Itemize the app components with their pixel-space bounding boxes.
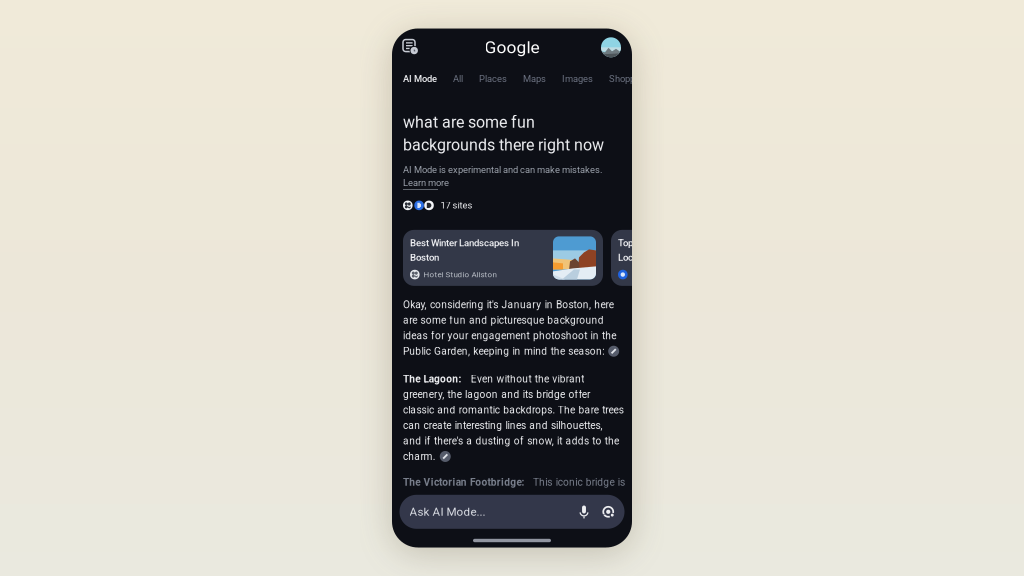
staticText: Visit Boston: [632, 270, 676, 279]
staticText: All: [453, 73, 463, 84]
staticText: and if there's a dusting of snow, it add…: [403, 435, 619, 447]
staticText: Boston: [410, 252, 439, 263]
staticText: Places: [479, 73, 507, 84]
button[interactable]: Images: [562, 73, 593, 84]
staticText: Locations In Boston: [618, 252, 699, 263]
staticText: backgrounds there right now: [403, 136, 604, 154]
button[interactable]: Learn more: [403, 177, 449, 190]
staticText: Ask AI Mode...: [409, 505, 485, 519]
staticText: The Victorian Footbridge:: [403, 476, 525, 488]
staticText: classic and romantic backdrops. The bare…: [403, 404, 624, 416]
button[interactable]: Top Winter Photo: [611, 230, 811, 286]
staticText: Even without the vibrant: [464, 373, 584, 385]
staticText: Okay, considering it's January in Boston…: [403, 299, 614, 311]
button[interactable]: AI Mode: [403, 73, 437, 84]
staticText: Google: [484, 37, 539, 57]
button[interactable]: Ask AI Mode...: [399, 495, 624, 539]
staticText: what are some fun: [403, 113, 535, 132]
staticText: charm.: [403, 450, 436, 462]
staticText: The Lagoon:: [403, 373, 461, 385]
button[interactable]: Places: [479, 73, 507, 84]
staticText: ideas for your engagement photoshoot in …: [403, 330, 616, 342]
staticText: This iconic bridge is: [528, 476, 625, 488]
staticText: are some fun and picturesque background: [403, 314, 604, 326]
button[interactable]: Best Winter Landscapes In: [403, 230, 603, 286]
staticText: Maps: [523, 73, 546, 84]
staticText: Public Garden, keeping in mind the seaso…: [403, 345, 604, 357]
staticText: Images: [562, 73, 593, 84]
button[interactable]: All: [453, 73, 463, 84]
staticText: Shopping: [609, 73, 647, 84]
staticText: greenery, the lagoon and its bridge offe…: [403, 389, 590, 400]
staticText: AI Mode is experimental and can make mis…: [403, 164, 602, 175]
button[interactable]: Google Account: [595, 34, 621, 60]
button[interactable]: Maps: [523, 73, 546, 84]
staticText: Top Winter Photo: [618, 237, 687, 249]
staticText: AI Mode: [403, 73, 437, 84]
staticText: Hotel Studio Allston: [424, 270, 497, 279]
button[interactable]: Search activity: [403, 34, 429, 60]
staticText: 17 sites: [440, 200, 472, 211]
staticText: Best Winter Landscapes In: [410, 237, 519, 249]
button[interactable]: Shopping: [609, 73, 647, 84]
staticText: can create interesting lines and silhoue…: [403, 420, 603, 431]
staticText: Learn more: [403, 177, 449, 188]
